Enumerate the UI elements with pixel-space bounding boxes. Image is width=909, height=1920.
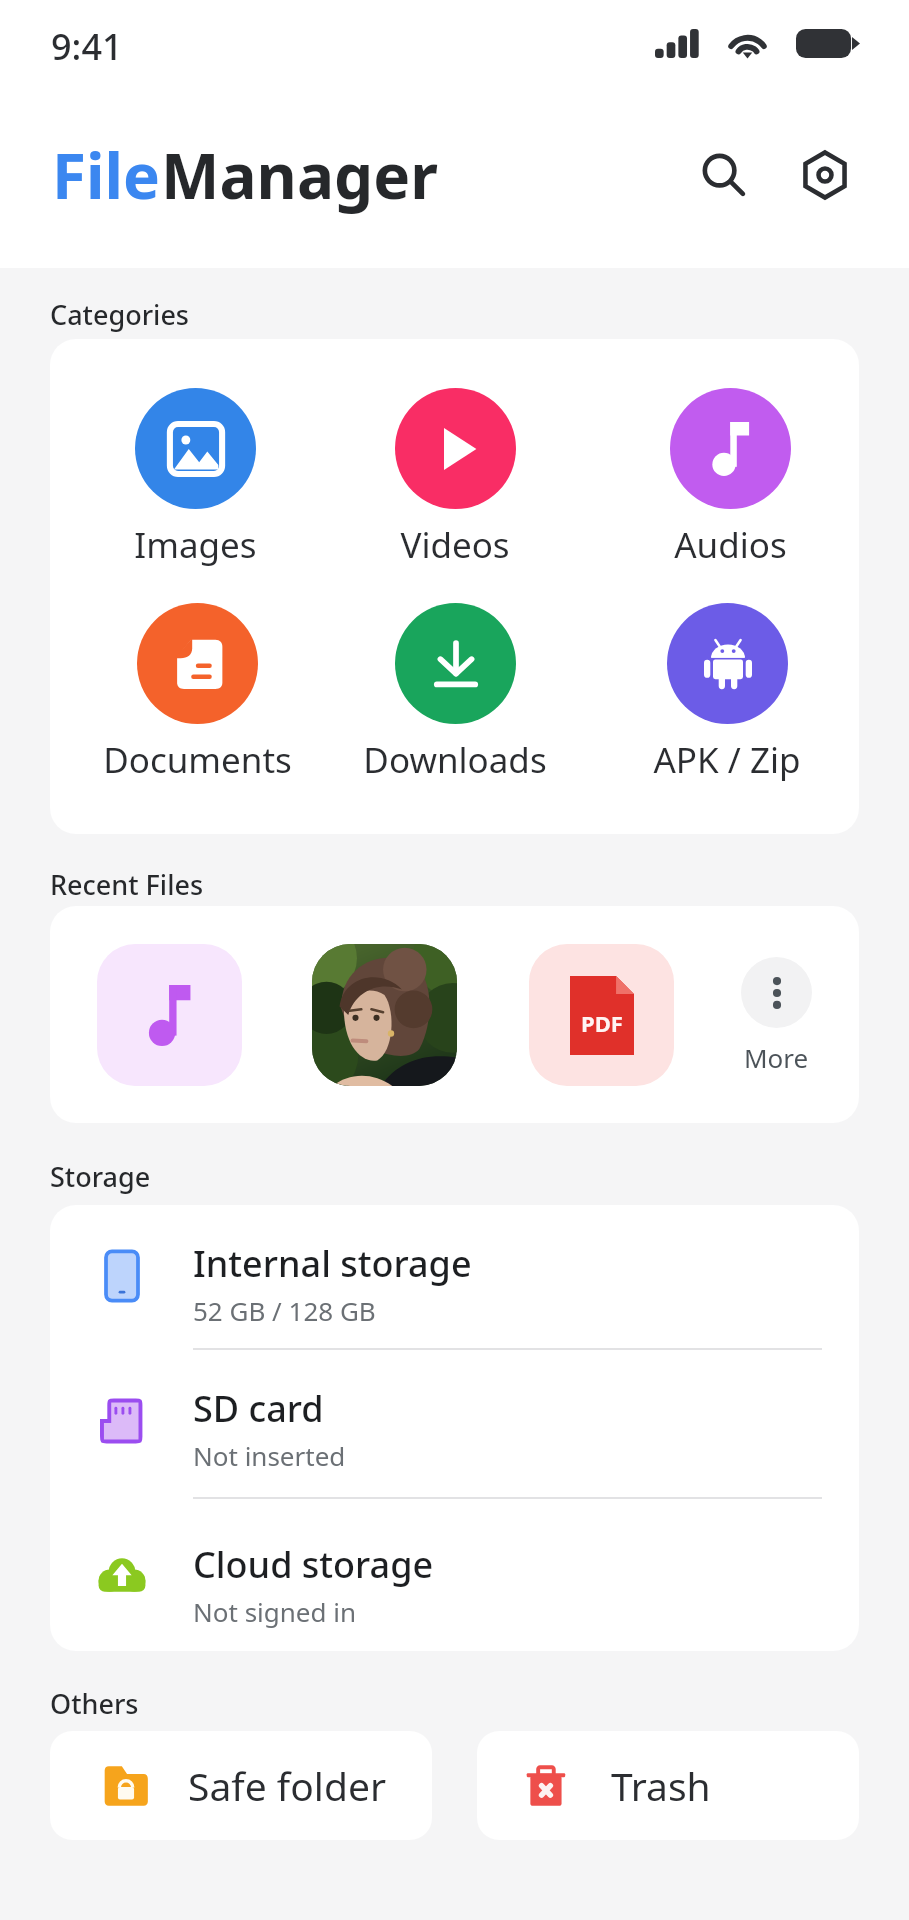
staticText: SD card [193, 1384, 324, 1433]
button[interactable]: Safe folder [50, 1731, 432, 1840]
staticText: Manager [161, 133, 438, 217]
staticText: File [52, 133, 161, 217]
staticText: Videos [400, 521, 510, 569]
staticText: Safe folder [188, 1759, 387, 1812]
button[interactable]: Downloads [345, 603, 565, 784]
button[interactable]: Documents [87, 603, 307, 784]
staticText: Documents [103, 736, 292, 784]
staticText: Storage [50, 1158, 151, 1195]
staticText: Categories [50, 296, 189, 333]
button[interactable]: Search [686, 137, 762, 213]
staticText: Not signed in [193, 1594, 357, 1629]
button[interactable]: Videos [345, 388, 565, 569]
staticText: Audios [674, 521, 787, 569]
button[interactable]: Photo file [312, 944, 457, 1086]
staticText: Images [134, 521, 257, 569]
button[interactable]: Images [85, 388, 305, 569]
staticText: More [744, 1040, 809, 1075]
staticText: APK / Zip [653, 736, 801, 784]
button[interactable]: Audio file [97, 944, 242, 1086]
button[interactable]: Trash [477, 1731, 859, 1840]
button[interactable]: PDF file [529, 944, 674, 1086]
button[interactable]: Audios [620, 388, 840, 569]
staticText: 9:41 [51, 22, 123, 71]
staticText: 52 GB / 128 GB [193, 1293, 376, 1328]
button[interactable]: More files [716, 957, 836, 1075]
staticText: Recent Files [50, 866, 204, 903]
button[interactable]: APK / Zip [617, 603, 837, 784]
staticText: Internal storage [193, 1239, 472, 1288]
staticText: Downloads [363, 736, 547, 784]
button[interactable]: SD card [50, 1372, 859, 1484]
button[interactable]: Settings [787, 137, 863, 213]
staticText: Not inserted [193, 1438, 346, 1473]
button[interactable]: Cloud storage [50, 1528, 859, 1640]
staticText: PDF [581, 1008, 623, 1038]
staticText: Others [50, 1685, 139, 1722]
button[interactable]: Internal storage [50, 1227, 859, 1339]
staticText: Trash [611, 1759, 711, 1812]
staticText: Cloud storage [193, 1540, 434, 1589]
